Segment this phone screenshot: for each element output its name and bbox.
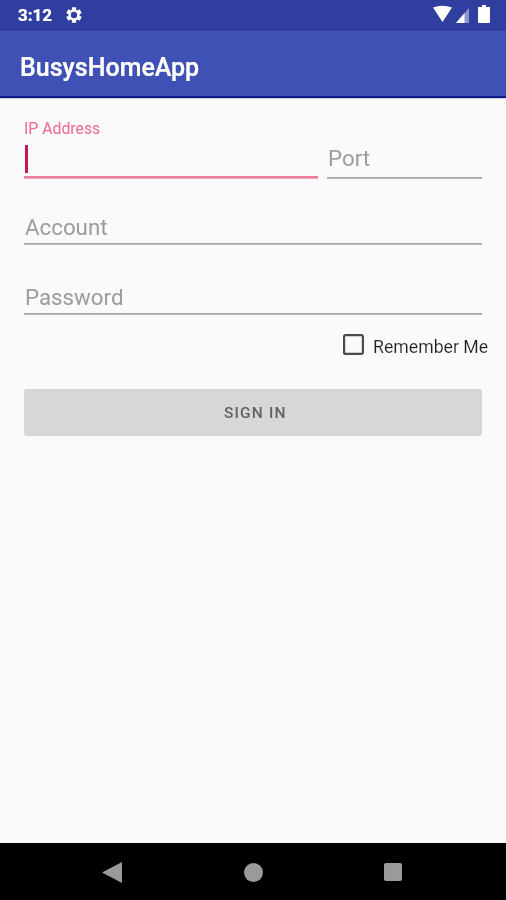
staticText: IP Address [24,119,101,138]
button[interactable]: SIGN IN [24,389,482,436]
staticText: Remember Me [373,337,489,358]
button[interactable]: Recent apps [373,852,413,892]
staticText: 3:12 [18,5,53,25]
button[interactable]: Remember Me [343,334,489,355]
staticText: SIGN IN [224,404,287,422]
button[interactable]: Back [92,852,132,892]
button[interactable]: Home [233,852,273,892]
staticText: Port [328,145,371,171]
staticText: Account [25,214,108,240]
staticText: Password [25,284,124,310]
staticText: BusysHomeApp [20,53,200,82]
other: Settings [66,7,82,23]
